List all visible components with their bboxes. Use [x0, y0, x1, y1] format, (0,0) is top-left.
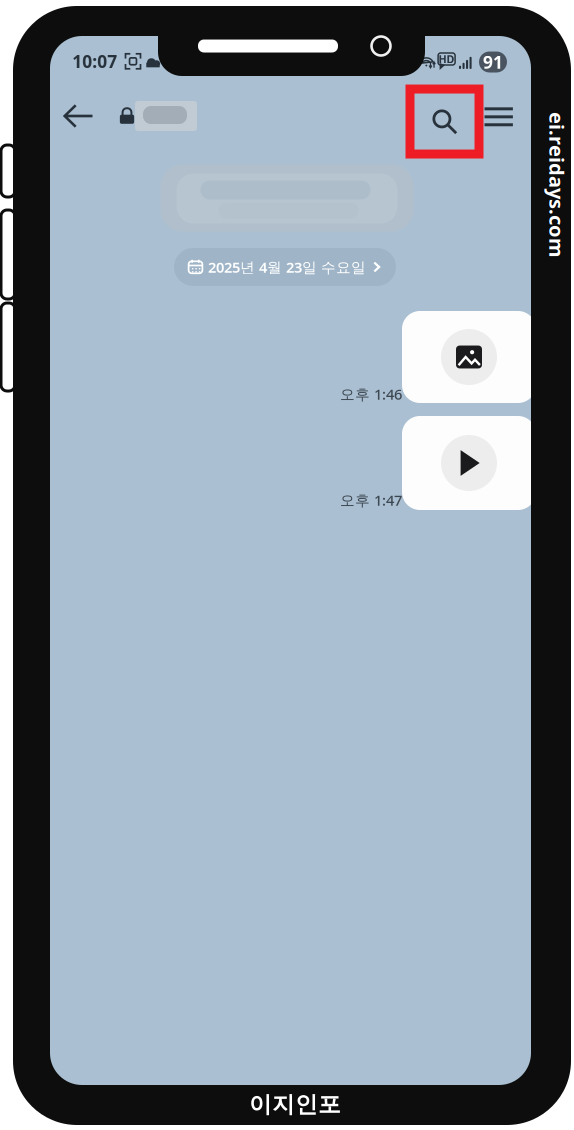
button[interactable]: Photo message — [402, 311, 536, 403]
staticText: 이지인포 — [249, 1091, 341, 1118]
button[interactable]: Menu — [476, 94, 522, 140]
button[interactable]: Video message — [402, 416, 536, 510]
staticText: HD — [439, 52, 455, 66]
button[interactable]: 2025년 4월 23일 수요일 — [174, 248, 396, 286]
staticText: 91 — [483, 50, 503, 73]
staticText: 오후 1:47 — [340, 490, 402, 510]
staticText: ei.reidays.com — [484, 172, 574, 198]
staticText: 10:07 — [72, 50, 117, 73]
button[interactable]: Search — [410, 89, 479, 154]
staticText: 2025년 4월 23일 수요일 — [208, 257, 366, 277]
button[interactable]: Back — [54, 92, 102, 140]
staticText: 오후 1:46 — [340, 384, 402, 404]
